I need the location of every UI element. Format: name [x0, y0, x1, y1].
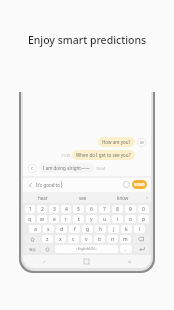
- button[interactable]: t: [73, 215, 84, 223]
- staticText: b: [98, 236, 102, 243]
- button[interactable]: Settings: [41, 245, 53, 253]
- staticText: 13:34: [96, 166, 105, 171]
- staticText: 3: [53, 206, 56, 213]
- staticText: y: [90, 216, 93, 223]
- staticText: g: [86, 226, 90, 233]
- button[interactable]: Emoji: [123, 181, 130, 188]
- staticText: a: [34, 226, 37, 233]
- button[interactable]: SEND: [132, 180, 147, 189]
- button[interactable]: u: [99, 215, 110, 223]
- staticText: r: [65, 216, 68, 223]
- button[interactable]: 7: [99, 205, 110, 213]
- staticText: know: [117, 195, 129, 201]
- staticText: 6: [90, 206, 93, 213]
- button[interactable]: 9: [125, 205, 136, 213]
- staticText: s: [47, 226, 50, 233]
- staticText: v: [85, 236, 88, 243]
- button[interactable]: l: [134, 225, 145, 233]
- button[interactable]: o: [125, 215, 136, 223]
- button[interactable]: 5: [73, 205, 84, 213]
- staticText: j: [113, 226, 115, 233]
- button[interactable]: 3: [49, 205, 59, 213]
- staticText: When do I get to see you?: [76, 152, 131, 158]
- button[interactable]: f: [69, 225, 80, 233]
- staticText: ‹ English(US) ›: [76, 247, 97, 251]
- button[interactable]: r: [61, 215, 71, 223]
- button[interactable]: How are you?: [98, 137, 135, 147]
- button[interactable]: Backspace: [133, 235, 149, 243]
- button[interactable]: 1: [25, 205, 35, 213]
- button[interactable]: 0: [138, 205, 149, 213]
- button[interactable]: z: [42, 235, 53, 243]
- button[interactable]: 2: [37, 205, 47, 213]
- button[interactable]: x: [55, 235, 66, 243]
- staticText: z: [46, 236, 49, 243]
- button[interactable]: 6: [86, 205, 97, 213]
- staticText: 7: [103, 206, 106, 213]
- button[interactable]: j: [108, 225, 119, 233]
- button[interactable]: Attach: [27, 181, 34, 188]
- button[interactable]: y: [86, 215, 97, 223]
- staticText: 11:33: [61, 153, 70, 158]
- button[interactable]: h: [95, 225, 106, 233]
- staticText: hear: [38, 195, 48, 201]
- button[interactable]: b: [94, 235, 105, 243]
- button[interactable]: w: [37, 215, 47, 223]
- button[interactable]: Back: [108, 255, 151, 268]
- button[interactable]: hear: [23, 192, 63, 203]
- button[interactable]: c: [68, 235, 79, 243]
- staticText: Enjoy smart predictions: [0, 33, 174, 47]
- button[interactable]: Recents: [23, 255, 65, 268]
- button[interactable]: d: [56, 225, 67, 233]
- staticText: !#☺: [29, 247, 36, 252]
- staticText: q: [28, 216, 32, 223]
- staticText: m: [123, 236, 128, 243]
- staticText: C: [31, 166, 34, 171]
- staticText: w: [40, 216, 44, 223]
- staticText: It's good to: [36, 182, 60, 188]
- staticText: 8: [116, 206, 119, 213]
- button[interactable]: 8: [112, 205, 123, 213]
- button[interactable]: p: [138, 215, 149, 223]
- button[interactable]: 4: [61, 205, 71, 213]
- staticText: 0: [142, 206, 145, 213]
- staticText: x: [59, 236, 62, 243]
- staticText: l: [139, 226, 141, 233]
- staticText: u: [103, 216, 107, 223]
- staticText: .: [125, 246, 127, 253]
- staticText: d: [60, 226, 64, 233]
- button[interactable]: e: [49, 215, 59, 223]
- staticText: k: [125, 226, 128, 233]
- staticText: 2: [41, 206, 44, 213]
- button[interactable]: Shift: [25, 235, 40, 243]
- button[interactable]: n: [107, 235, 118, 243]
- button[interactable]: know: [103, 192, 143, 203]
- staticText: 1: [29, 206, 32, 213]
- button[interactable]: v: [81, 235, 92, 243]
- staticText: t: [78, 216, 80, 223]
- button[interactable]: i: [112, 215, 123, 223]
- button[interactable]: k: [121, 225, 132, 233]
- button[interactable]: g: [82, 225, 93, 233]
- button[interactable]: Home: [65, 255, 108, 268]
- staticText: h: [99, 226, 103, 233]
- button[interactable]: q: [25, 215, 35, 223]
- button[interactable]: Enter: [134, 245, 149, 253]
- staticText: 5: [77, 206, 80, 213]
- staticText: n: [111, 236, 115, 243]
- button[interactable]: More suggestions: [143, 192, 151, 203]
- button[interactable]: .: [120, 245, 132, 253]
- button[interactable]: Symbols: [25, 245, 39, 253]
- button[interactable]: m: [120, 235, 131, 243]
- button[interactable]: a: [29, 225, 41, 233]
- staticText: e: [53, 216, 56, 223]
- button[interactable]: s: [43, 225, 54, 233]
- button[interactable]: When do I get to see you?: [72, 150, 135, 160]
- staticText: M: [140, 140, 144, 145]
- button[interactable]: ‹ English(US) ›: [55, 245, 118, 253]
- staticText: I am doing alright——: [43, 165, 90, 171]
- button[interactable]: I am doing alright——: [39, 163, 94, 173]
- staticText: p: [142, 216, 146, 223]
- staticText: see: [79, 195, 87, 201]
- button[interactable]: see: [63, 192, 103, 203]
